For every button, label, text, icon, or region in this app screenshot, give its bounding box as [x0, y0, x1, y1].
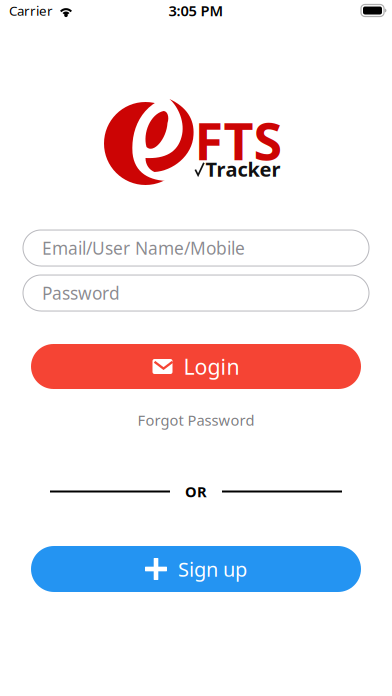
button[interactable]: Login	[31, 344, 361, 389]
staticText: Carrier	[9, 2, 53, 19]
staticText: FTS	[194, 105, 282, 175]
button[interactable]: Sign up	[31, 546, 361, 592]
staticText: 3:05 PM	[168, 1, 223, 20]
staticText: Tracker	[205, 156, 280, 182]
button[interactable]: Forgot Password	[137, 409, 254, 431]
staticText: Password	[42, 281, 120, 304]
staticText: Sign up	[178, 556, 247, 582]
staticText: OR	[185, 482, 207, 501]
staticText: Forgot Password	[137, 410, 254, 430]
staticText: Email/User Name/Mobile	[42, 236, 245, 259]
staticText: Login	[183, 352, 239, 381]
